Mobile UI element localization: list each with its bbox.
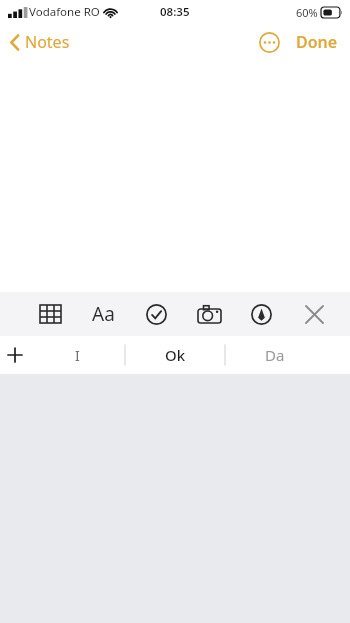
staticText: Done (296, 31, 338, 53)
button[interactable]: More options (254, 27, 284, 57)
button[interactable]: Text format (83, 294, 123, 334)
staticText: Da (265, 345, 285, 365)
button[interactable]: Done (294, 27, 340, 57)
button[interactable]: Table (30, 294, 70, 334)
staticText: 08:35 (160, 4, 190, 20)
staticText: Vodafone RO (29, 4, 100, 20)
button[interactable]: Close keyboard (294, 294, 334, 334)
button[interactable]: I (30, 336, 125, 374)
button[interactable]: Ok (125, 336, 225, 374)
staticText: Notes (25, 31, 70, 53)
button[interactable]: Markup (241, 294, 281, 334)
staticText: Ok (165, 345, 186, 365)
button[interactable]: Da (225, 336, 325, 374)
button[interactable]: Add (0, 336, 30, 374)
button[interactable]: Notes (6, 27, 74, 57)
staticText: Aa (92, 301, 115, 327)
button[interactable]: Camera (189, 294, 229, 334)
staticText: I (75, 346, 80, 365)
button[interactable]: Checklist (136, 294, 176, 334)
staticText: 60% (296, 5, 318, 20)
